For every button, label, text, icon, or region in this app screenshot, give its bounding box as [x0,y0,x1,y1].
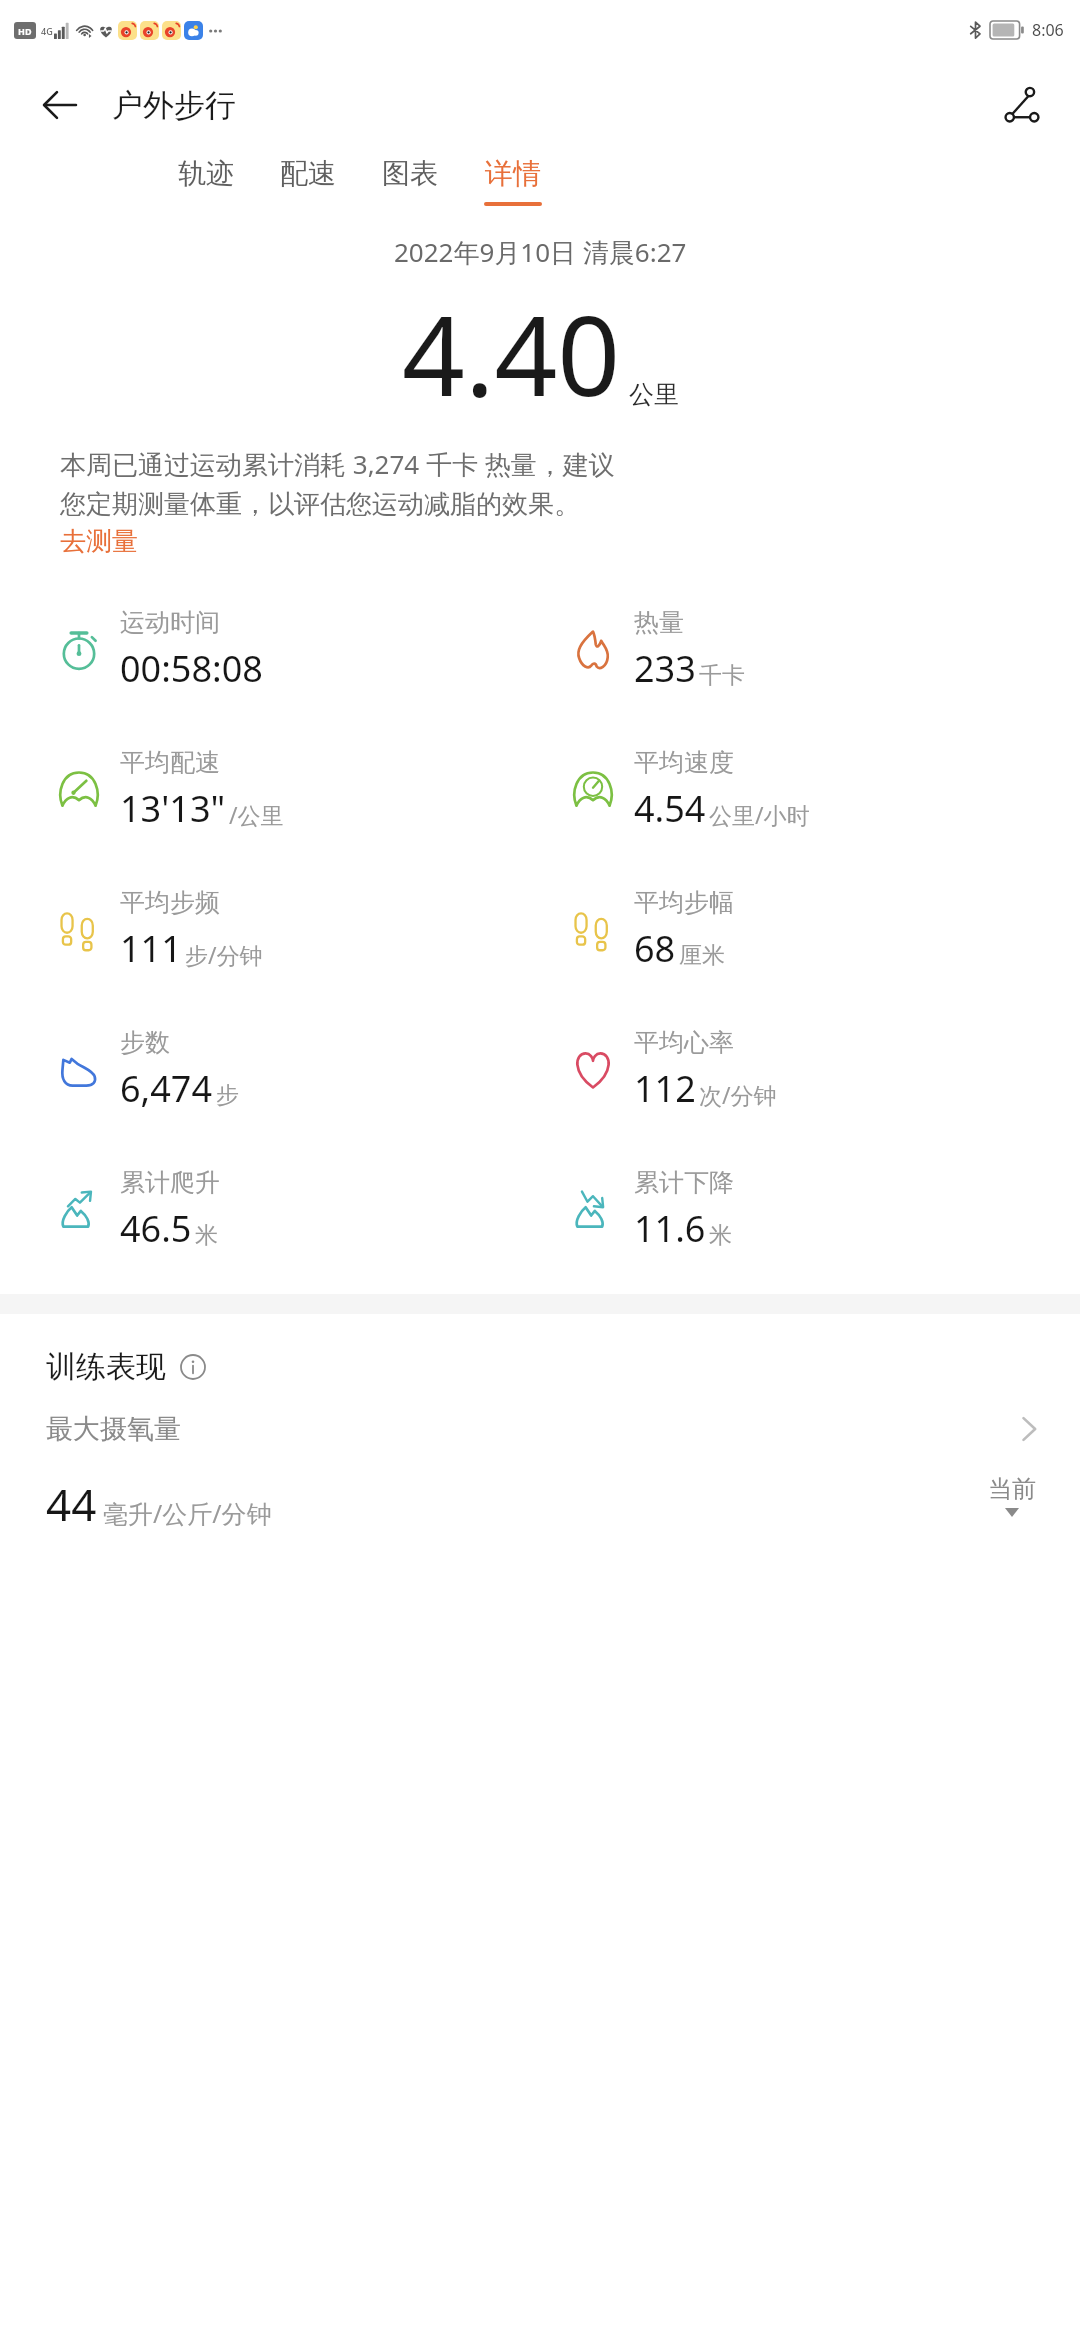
button[interactable]: 累计下降 [570,1140,1080,1280]
staticText: 去测量 [60,525,138,558]
button[interactable]: 平均步频 [56,860,540,1000]
staticText: 111 [120,924,182,973]
staticText: 步 [216,1081,239,1110]
button[interactable]: 平均配速 [56,720,540,860]
button[interactable]: 平均速度 [570,720,1080,860]
button[interactable]: 热量 [570,580,1080,720]
staticText: 112 [634,1064,696,1113]
staticText: 平均步频 [120,887,220,918]
staticText: 00:58:08 [120,644,263,693]
staticText: 图表 [382,156,438,191]
staticText: 11.6 [634,1204,706,1253]
staticText: 步/分钟 [185,939,263,970]
staticText: 本周已通过运动累计消耗 3,274 千卡 热量，建议 [60,446,615,482]
staticText: 次/分钟 [699,1079,777,1110]
staticText: 千卡 [699,661,745,690]
staticText: 厘米 [679,941,725,970]
button[interactable]: 图表 [382,150,438,212]
button[interactable]: 详情 [484,150,542,212]
button[interactable]: 运动时间 [56,580,540,720]
button[interactable]: 平均步幅 [570,860,1080,1000]
staticText: 米 [709,1221,732,1250]
staticText: 详情 [485,156,541,191]
button[interactable]: Share [994,77,1050,133]
staticText: 4.54 [634,784,706,833]
staticText: 公里/小时 [709,799,810,830]
staticText: 平均速度 [634,747,734,778]
staticText: 13'13" [120,784,226,833]
staticText: /公里 [229,799,284,830]
button[interactable]: Back [34,79,86,131]
staticText: 累计爬升 [120,1167,220,1198]
staticText: 6,474 [120,1064,213,1113]
staticText: 运动时间 [120,607,220,638]
staticText: 平均配速 [120,747,220,778]
button[interactable]: 轨迹 [178,150,234,212]
staticText: 最大摄氧量 [46,1412,181,1446]
staticText: 毫升/公斤/分钟 [103,1496,272,1530]
staticText: 轨迹 [178,156,234,191]
staticText: 46.5 [120,1204,192,1253]
staticText: 4.40 [402,278,621,428]
staticText: 配速 [280,156,336,191]
button[interactable]: 平均心率 [570,1000,1080,1140]
button[interactable]: 配速 [280,150,336,212]
staticText: 户外步行 [112,86,236,125]
staticText: 您定期测量体重，以评估您运动减脂的效果。 [60,488,580,521]
button[interactable]: 累计爬升 [56,1140,540,1280]
staticText: 公里 [629,379,679,410]
button[interactable]: 步数 [56,1000,540,1140]
staticText: 2022年9月10日 清晨6:27 [394,234,687,270]
staticText: 当前 [988,1474,1036,1504]
staticText: 平均步幅 [634,887,734,918]
button[interactable]: 去测量 [60,525,138,558]
staticText: 8:06 [1032,19,1064,41]
staticText: HD [18,25,32,37]
button[interactable]: 最大摄氧量 [0,1412,1080,1446]
staticText: 233 [634,644,696,693]
staticText: 热量 [634,607,684,638]
staticText: 累计下降 [634,1167,734,1198]
staticText: 4G [41,25,53,37]
staticText: 68 [634,924,676,973]
staticText: 平均心率 [634,1027,734,1058]
staticText: 训练表现 [46,1348,166,1386]
staticText: 44 [46,1474,97,1534]
staticText: 米 [195,1221,218,1250]
staticText: 步数 [120,1027,170,1058]
button[interactable]: Info [178,1352,208,1382]
